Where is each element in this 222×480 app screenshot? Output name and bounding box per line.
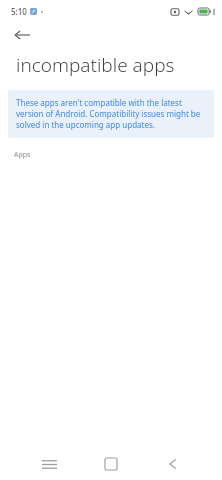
button[interactable]: Back [10,23,34,47]
button[interactable]: Back [142,448,204,480]
staticText: These apps aren't compatible with the la… [16,97,206,130]
staticText: Apps [14,150,31,160]
button[interactable]: Recent apps [18,448,80,480]
staticText: incompatible apps [16,52,175,78]
button[interactable]: Home [80,448,142,480]
staticText: 5:10 [11,6,27,17]
